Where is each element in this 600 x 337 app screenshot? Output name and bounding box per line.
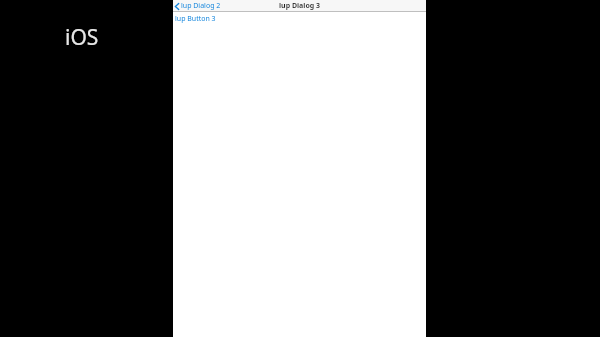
staticText: lup Dialog 2 (181, 1, 221, 11)
staticText: lup Button 3 (175, 14, 216, 24)
staticText: iOS (65, 23, 99, 52)
button[interactable]: lup Dialog 2 (173, 0, 225, 12)
button[interactable]: lup Button 3 (173, 12, 219, 26)
staticText: lup Dialog 3 (279, 1, 320, 11)
